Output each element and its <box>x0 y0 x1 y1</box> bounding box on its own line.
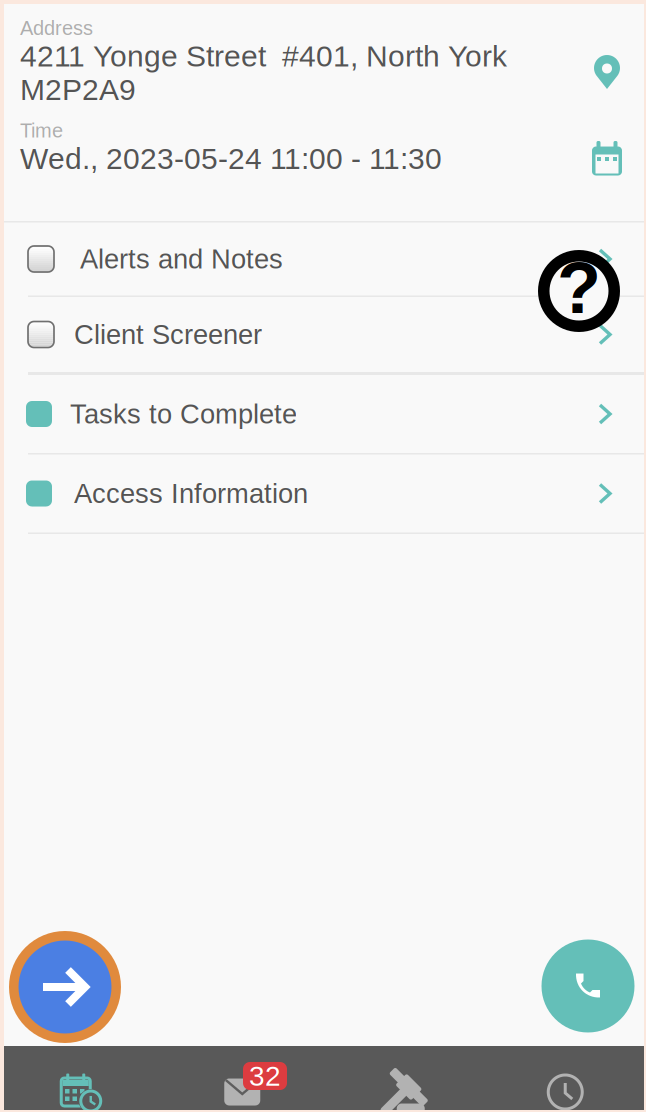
button[interactable]: Claims <box>323 1046 484 1112</box>
staticText: Address <box>20 17 93 39</box>
staticText: ? <box>557 248 601 328</box>
button[interactable]: Next <box>8 930 122 1044</box>
staticText: Wed., 2023-05-24 11:00 - 11:30 <box>20 142 442 175</box>
staticText: 32 <box>249 1060 281 1092</box>
staticText: M2P2A9 <box>20 73 136 106</box>
button[interactable]: Add to calendar <box>591 141 623 177</box>
button[interactable]: Help <box>538 250 620 332</box>
button[interactable]: Tasks to Complete <box>0 375 646 453</box>
staticText: 4211 Yonge Street #401, North York <box>20 39 507 73</box>
staticText: Tasks to Complete <box>70 399 297 429</box>
button[interactable]: History <box>484 1046 646 1112</box>
button[interactable]: Schedule <box>0 1046 161 1112</box>
button[interactable]: Access Information <box>0 454 646 532</box>
staticText: Alerts and Notes <box>80 244 283 274</box>
staticText: Time <box>20 119 63 142</box>
button[interactable]: Alerts and Notes <box>0 222 646 295</box>
button[interactable]: Show address on map <box>592 54 622 90</box>
button[interactable]: Client Screener <box>0 297 646 372</box>
staticText: Access Information <box>74 478 308 509</box>
button[interactable]: Messages, 32 unread <box>161 1046 323 1112</box>
staticText: Client Screener <box>74 319 262 350</box>
button[interactable]: Call <box>540 938 635 1033</box>
